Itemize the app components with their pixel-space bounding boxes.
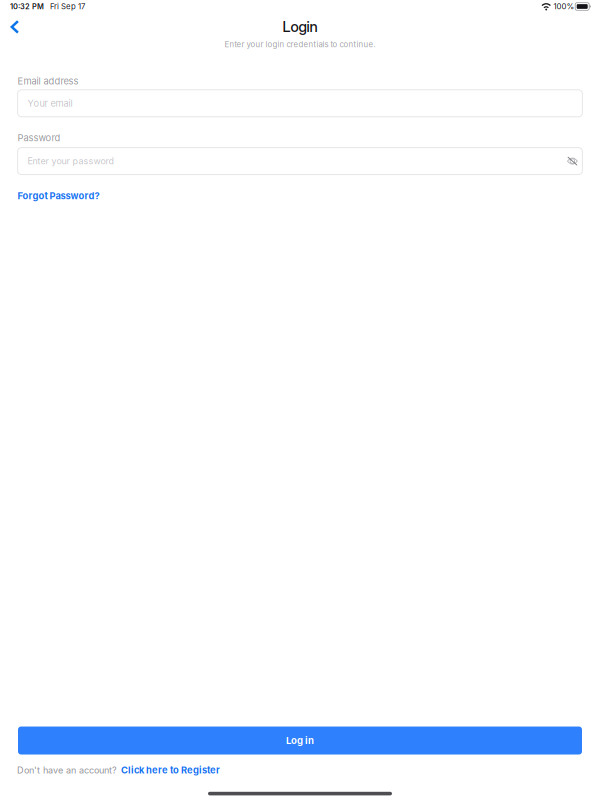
button[interactable]: Click here to Register [117, 764, 220, 776]
staticText: Don't have an account? [17, 765, 117, 776]
button[interactable]: Back [0, 13, 31, 42]
staticText: Enter your password [27, 156, 113, 166]
staticText: Enter your login credentials to continue… [224, 40, 375, 49]
button[interactable]: Show password [564, 154, 579, 168]
staticText: Password [18, 132, 61, 144]
staticText: Click here to Register [121, 764, 220, 776]
button[interactable]: Enter your password [18, 148, 582, 175]
staticText: Fri Sep 17 [50, 2, 85, 11]
button[interactable]: Forgot Password? [18, 187, 100, 204]
button[interactable]: Log in [18, 726, 582, 754]
staticText: 100% [554, 2, 575, 11]
button[interactable]: Your email [18, 90, 582, 117]
staticText: Your email [27, 98, 72, 109]
staticText: Login [282, 18, 317, 36]
staticText: 10:32 PM [10, 2, 44, 11]
staticText: Forgot Password? [18, 190, 100, 201]
staticText: Email address [18, 75, 79, 87]
staticText: Log in [286, 735, 314, 746]
